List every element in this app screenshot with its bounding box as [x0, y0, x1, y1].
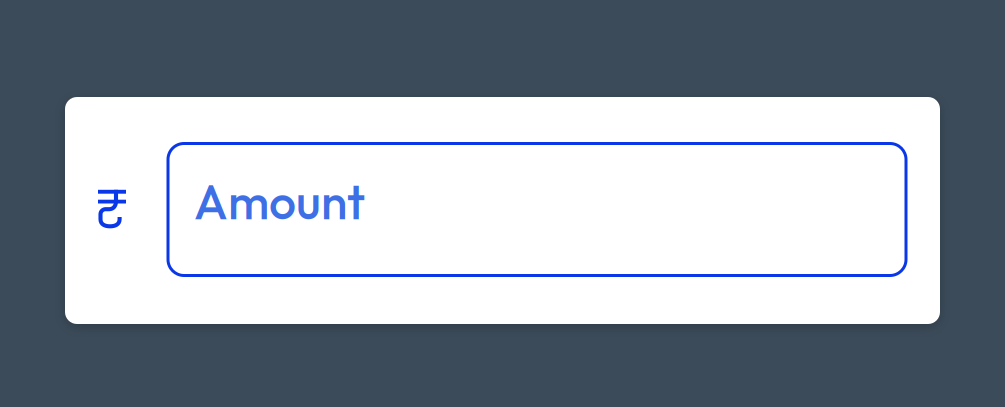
button[interactable]: Amount: [168, 143, 906, 275]
staticText: Amount: [194, 171, 365, 232]
